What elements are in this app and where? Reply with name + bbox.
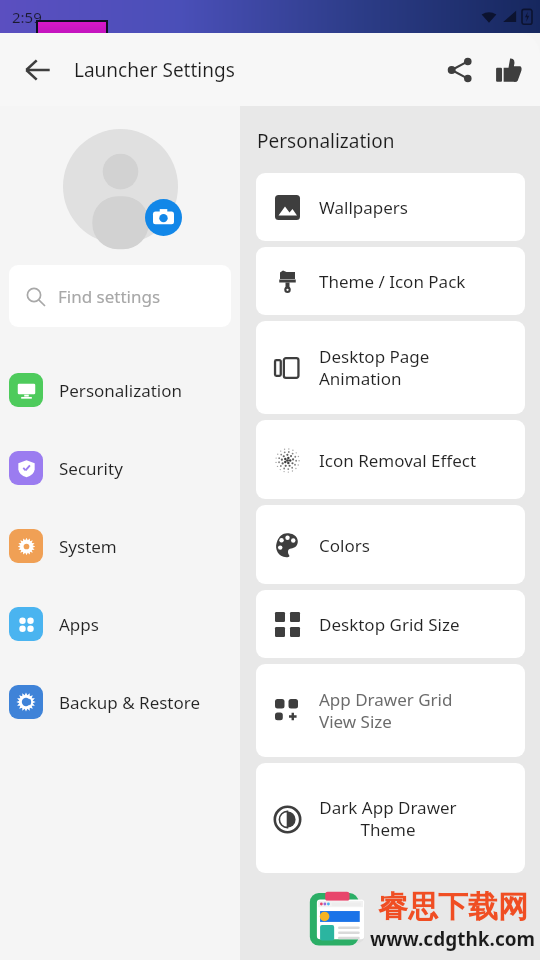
button[interactable]: Security xyxy=(0,429,240,507)
button[interactable]: Desktop Page Animation xyxy=(256,321,525,414)
staticText: Theme / Icon Pack xyxy=(319,270,466,293)
button[interactable]: Personalization xyxy=(0,351,240,429)
staticText: Security xyxy=(59,457,123,480)
staticText: Colors xyxy=(319,534,370,557)
button[interactable]: System xyxy=(0,507,240,585)
button[interactable]: Back xyxy=(14,46,62,94)
button[interactable]: Dark App Drawer Theme xyxy=(256,763,525,873)
button[interactable]: Find settings xyxy=(9,265,231,327)
button[interactable]: Change photo xyxy=(145,199,182,236)
staticText: www.cdgthk.com xyxy=(370,926,536,952)
button[interactable]: Share xyxy=(436,46,484,94)
staticText: 2:59 xyxy=(12,7,42,27)
staticText: Find settings xyxy=(58,285,161,308)
staticText: Desktop Page Animation xyxy=(319,345,430,390)
staticText: Desktop Grid Size xyxy=(319,613,460,636)
staticText: Personalization xyxy=(257,128,395,154)
staticText: Wallpapers xyxy=(319,196,408,219)
staticText: 睿思下载网 xyxy=(378,888,528,926)
staticText: Personalization xyxy=(59,379,182,402)
staticText: Backup & Restore xyxy=(59,691,201,714)
button[interactable]: App Drawer Grid View Size xyxy=(256,664,525,757)
staticText: Apps xyxy=(59,613,99,636)
button[interactable]: Apps xyxy=(0,585,240,663)
button[interactable]: Colors xyxy=(256,505,525,584)
button[interactable]: Icon Removal Effect xyxy=(256,420,525,499)
staticText: Launcher Settings xyxy=(74,57,235,83)
button[interactable]: Rate xyxy=(484,46,532,94)
staticText: App Drawer Grid View Size xyxy=(319,688,453,733)
button[interactable]: Backup & Restore xyxy=(0,663,240,741)
staticText: Dark App Drawer Theme xyxy=(319,796,457,841)
staticText: Icon Removal Effect xyxy=(319,449,477,472)
staticText: System xyxy=(59,535,117,558)
button[interactable]: Desktop Grid Size xyxy=(256,590,525,658)
button[interactable]: Wallpapers xyxy=(256,173,525,241)
button[interactable]: Theme / Icon Pack xyxy=(256,247,525,315)
